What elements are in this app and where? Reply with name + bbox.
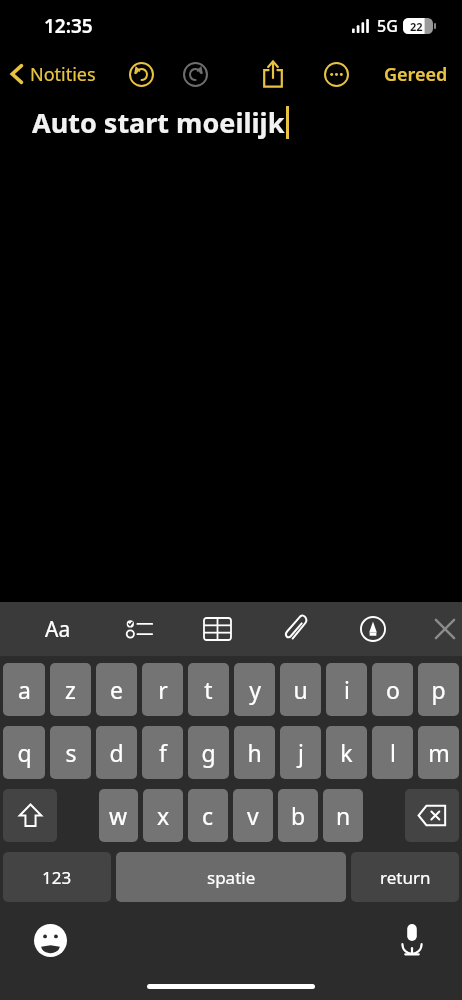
button[interactable]: return [351, 852, 459, 902]
button[interactable]: x [143, 789, 183, 842]
button[interactable]: g [188, 726, 229, 779]
staticText: j [298, 737, 304, 768]
button[interactable]: w [99, 789, 138, 842]
staticText: 22 [410, 19, 423, 34]
button[interactable]: v [233, 789, 273, 842]
staticText: v [247, 800, 259, 831]
staticText: w [109, 800, 128, 831]
button[interactable]: b [278, 789, 318, 842]
button[interactable]: i [326, 663, 367, 716]
staticText: Gereed [384, 62, 448, 87]
staticText: n [336, 800, 351, 831]
button[interactable]: Undo [120, 53, 162, 95]
button[interactable]: 123 [3, 852, 111, 902]
staticText: q [17, 737, 32, 768]
button[interactable]: z [50, 663, 91, 716]
button[interactable]: Redo [174, 53, 216, 95]
button[interactable]: Checklist [119, 609, 159, 649]
button[interactable]: Shift [3, 789, 57, 842]
button[interactable]: u [280, 663, 321, 716]
button[interactable]: Attach [275, 609, 315, 649]
button[interactable]: n [323, 789, 363, 842]
button[interactable]: t [188, 663, 229, 716]
button[interactable]: Table [197, 609, 237, 649]
button[interactable]: Share [252, 53, 294, 95]
staticText: 5G [377, 15, 398, 37]
button[interactable]: y [234, 663, 275, 716]
button[interactable]: m [418, 726, 459, 779]
staticText: z [65, 674, 76, 705]
staticText: b [291, 800, 306, 831]
button[interactable]: Markup [353, 609, 393, 649]
button[interactable]: q [3, 726, 45, 779]
staticText: Notities [30, 62, 96, 87]
button[interactable]: o [372, 663, 413, 716]
button[interactable]: p [418, 663, 459, 716]
button[interactable]: l [372, 726, 413, 779]
staticText: Aa [45, 615, 71, 644]
staticText: s [65, 737, 77, 768]
button[interactable]: e [96, 663, 137, 716]
button[interactable]: Notities [0, 52, 104, 96]
staticText: spatie [207, 866, 256, 889]
button[interactable]: r [142, 663, 183, 716]
button[interactable]: s [50, 726, 91, 779]
button[interactable]: Emoji [28, 918, 72, 962]
staticText: g [201, 737, 216, 768]
button[interactable]: h [234, 726, 275, 779]
staticText: k [340, 737, 353, 768]
staticText: h [247, 737, 262, 768]
staticText: x [157, 800, 170, 831]
button[interactable]: Close keyboard [427, 609, 462, 649]
staticText: return [380, 866, 431, 889]
staticText: p [431, 674, 446, 705]
staticText: o [386, 674, 400, 705]
button[interactable]: Dictation [390, 918, 434, 962]
staticText: i [344, 674, 350, 705]
staticText: t [204, 674, 213, 705]
button[interactable]: c [188, 789, 228, 842]
staticText: d [109, 737, 124, 768]
button[interactable]: k [326, 726, 367, 779]
staticText: a [18, 674, 31, 705]
button[interactable]: j [280, 726, 321, 779]
button[interactable]: d [96, 726, 137, 779]
button[interactable]: a [3, 663, 45, 716]
button[interactable]: spatie [116, 852, 346, 902]
staticText: r [158, 674, 168, 705]
staticText: y [249, 674, 261, 705]
staticText: f [159, 737, 167, 768]
button[interactable]: Text format [38, 609, 78, 649]
button[interactable]: Gereed [370, 52, 462, 96]
button[interactable]: Backspace [405, 789, 459, 842]
staticText: u [293, 674, 308, 705]
staticText: 12:35 [44, 13, 93, 39]
staticText: Auto start moeilijk [32, 104, 285, 141]
button[interactable]: More [315, 53, 357, 95]
staticText: 123 [42, 866, 72, 889]
button[interactable]: f [142, 726, 183, 779]
staticText: l [390, 737, 396, 768]
staticText: m [428, 737, 450, 768]
staticText: e [110, 674, 123, 705]
staticText: c [202, 800, 214, 831]
